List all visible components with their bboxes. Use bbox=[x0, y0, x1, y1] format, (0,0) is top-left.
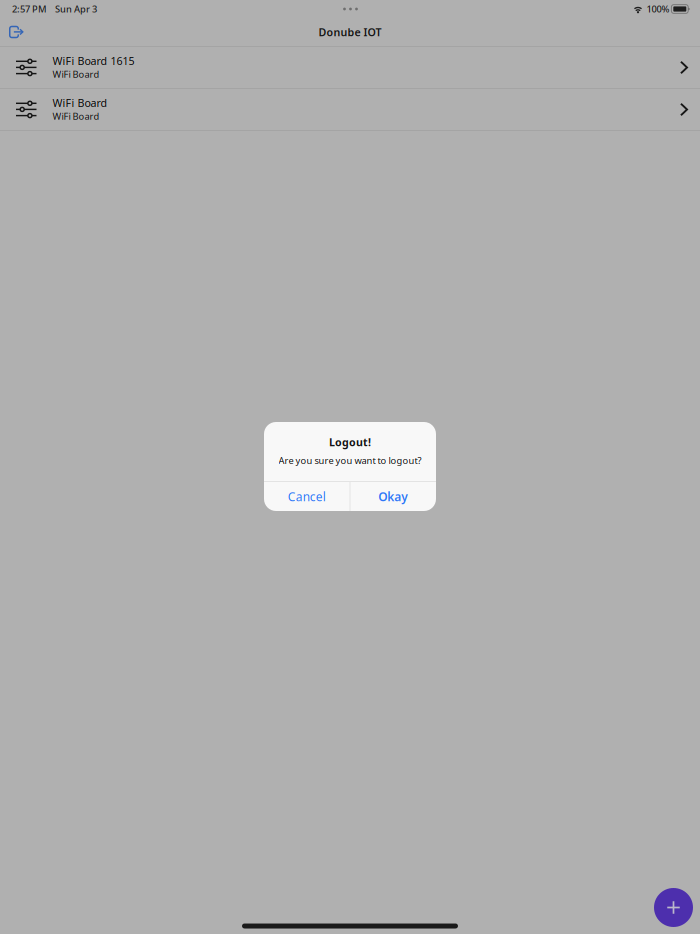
staticText: Okay bbox=[378, 488, 408, 504]
button[interactable]: WiFi Board 1615 bbox=[0, 47, 700, 88]
button[interactable]: WiFi Board bbox=[0, 89, 700, 130]
staticText: Sun Apr 3 bbox=[55, 3, 97, 15]
staticText: Cancel bbox=[288, 488, 326, 504]
staticText: WiFi Board bbox=[52, 68, 99, 80]
staticText: Are you sure you want to logout? bbox=[278, 454, 421, 467]
button[interactable]: Okay bbox=[350, 482, 436, 511]
staticText: 100% bbox=[646, 3, 669, 15]
staticText: 2:57 PM bbox=[12, 3, 47, 15]
staticText: Logout! bbox=[329, 435, 371, 449]
staticText: WiFi Board 1615 bbox=[52, 54, 134, 68]
staticText: WiFi Board bbox=[52, 96, 107, 110]
button[interactable]: Add device bbox=[654, 888, 693, 927]
staticText: Donube IOT bbox=[318, 25, 381, 39]
button[interactable]: Cancel bbox=[264, 482, 349, 511]
staticText: WiFi Board bbox=[52, 110, 99, 122]
button[interactable]: Log out bbox=[0, 20, 32, 44]
